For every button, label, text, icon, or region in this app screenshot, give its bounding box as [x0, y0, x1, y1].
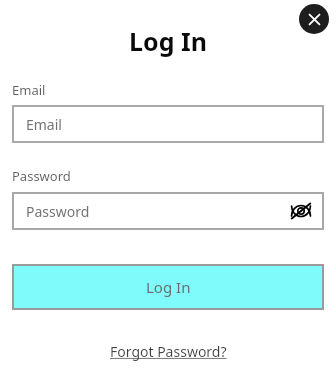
- button[interactable]: Email: [12, 105, 324, 143]
- staticText: Email: [12, 81, 46, 99]
- button[interactable]: Close: [299, 4, 329, 34]
- button[interactable]: Show password: [288, 198, 314, 224]
- staticText: Password: [12, 167, 71, 185]
- button[interactable]: Forgot Password?: [104, 340, 233, 363]
- staticText: Log In: [0, 24, 336, 58]
- staticText: Log In: [146, 277, 191, 297]
- staticText: Password: [26, 202, 90, 221]
- button[interactable]: Log In: [12, 264, 324, 310]
- button[interactable]: Password: [12, 192, 324, 230]
- staticText: Email: [26, 115, 62, 134]
